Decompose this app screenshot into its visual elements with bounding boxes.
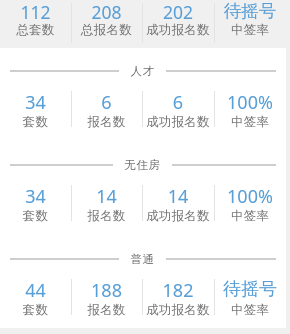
staticText: 报名数 [71, 114, 142, 130]
button[interactable]: 套数 34 [0, 78, 71, 142]
staticText: 中签率 [214, 114, 286, 130]
button[interactable]: 成功报名数 6 [142, 78, 214, 142]
staticText: 无住房 [124, 158, 161, 172]
button[interactable]: 中签率 100% [214, 78, 286, 142]
staticText: 中签率 [214, 208, 286, 224]
button[interactable]: 报名数 14 [71, 172, 142, 236]
staticText: 总套数 [0, 22, 71, 38]
button[interactable]: 总报名数 208 [71, 0, 142, 48]
button[interactable]: 成功报名数 182 [142, 266, 214, 328]
staticText: 成功报名数 [142, 114, 214, 130]
staticText: 202 [142, 0, 214, 24]
button[interactable]: 报名数 188 [71, 266, 142, 328]
staticText: 普通 [130, 252, 155, 266]
staticText: 34 [0, 184, 71, 209]
staticText: 套数 [0, 114, 71, 130]
staticText: 100% [214, 90, 286, 115]
staticText: 44 [0, 278, 71, 303]
staticText: 182 [142, 278, 214, 303]
staticText: 14 [142, 184, 214, 209]
staticText: 总报名数 [71, 22, 142, 38]
staticText: 报名数 [71, 302, 142, 318]
button[interactable]: 成功报名数 14 [142, 172, 214, 236]
button[interactable]: 总套数 112 [0, 0, 71, 48]
staticText: 中签率 [214, 22, 286, 38]
staticText: 中签率 [214, 302, 286, 318]
staticText: 套数 [0, 302, 71, 318]
staticText: 套数 [0, 208, 71, 224]
staticText: 6 [71, 90, 142, 115]
staticText: 人才 [130, 64, 155, 78]
staticText: 成功报名数 [142, 22, 214, 38]
staticText: 34 [0, 90, 71, 115]
button[interactable]: 套数 34 [0, 172, 71, 236]
staticText: 208 [71, 0, 142, 24]
button[interactable]: 中签率 待摇号 [214, 266, 286, 328]
staticText: 待摇号 [214, 0, 286, 22]
staticText: 100% [214, 184, 286, 209]
staticText: 报名数 [71, 208, 142, 224]
button[interactable]: 中签率 100% [214, 172, 286, 236]
staticText: 14 [71, 184, 142, 209]
button[interactable]: 中签率 待摇号 [214, 0, 286, 48]
staticText: 6 [142, 90, 214, 115]
staticText: 成功报名数 [142, 208, 214, 224]
staticText: 188 [71, 278, 142, 303]
button[interactable]: 套数 44 [0, 266, 71, 328]
button[interactable]: 成功报名数 202 [142, 0, 214, 48]
staticText: 待摇号 [214, 278, 286, 301]
button[interactable]: 报名数 6 [71, 78, 142, 142]
staticText: 112 [0, 0, 71, 24]
staticText: 成功报名数 [142, 302, 214, 318]
